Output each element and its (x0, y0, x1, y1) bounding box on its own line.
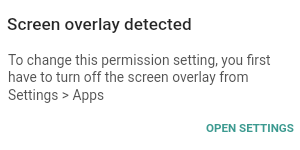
staticText: Screen overlay detected (7, 14, 192, 34)
staticText: To change this permission setting, you f… (8, 52, 282, 103)
button[interactable]: OPEN SETTINGS (204, 119, 296, 137)
staticText: OPEN SETTINGS (206, 121, 294, 135)
